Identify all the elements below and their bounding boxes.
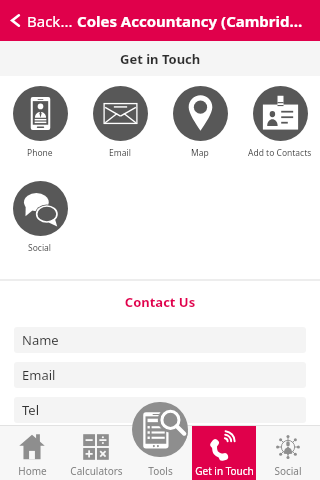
button[interactable]: Name [14, 327, 306, 353]
button[interactable]: Tel [14, 397, 306, 423]
button[interactable]: Phone [0, 86, 80, 159]
staticText: Social [28, 242, 52, 254]
button[interactable]: Calculators [64, 425, 128, 480]
staticText: Contact Us [0, 293, 320, 311]
button[interactable]: Social [256, 425, 320, 480]
staticText: Map [191, 147, 209, 159]
button[interactable]: Tools [128, 425, 192, 480]
button[interactable]: Email [14, 362, 306, 388]
staticText: Get in Touch [195, 464, 254, 478]
staticText: Home [18, 464, 47, 478]
staticText: Social [274, 464, 302, 478]
staticText: Name [22, 331, 59, 349]
button[interactable]: Map [160, 86, 240, 159]
staticText: Email [109, 147, 131, 159]
staticText: Coles Accountancy (Cambrid… [77, 11, 303, 31]
button[interactable]: Email [80, 86, 160, 159]
staticText: Back... [27, 11, 73, 31]
staticText: Get in Touch [120, 50, 201, 68]
staticText: Calculators [70, 464, 123, 478]
staticText: Phone [27, 147, 53, 159]
button[interactable]: Add to Contacts [240, 86, 320, 159]
button[interactable]: Social [0, 181, 80, 254]
button[interactable]: Home [0, 425, 64, 480]
button[interactable]: Tools [132, 402, 188, 457]
staticText: Add to Contacts [248, 147, 312, 159]
button[interactable]: Get in Touch [192, 425, 256, 480]
staticText: Tools [148, 464, 173, 478]
staticText: Tel [22, 401, 40, 419]
staticText: Email [22, 366, 56, 384]
button[interactable]: Back [0, 0, 77, 41]
